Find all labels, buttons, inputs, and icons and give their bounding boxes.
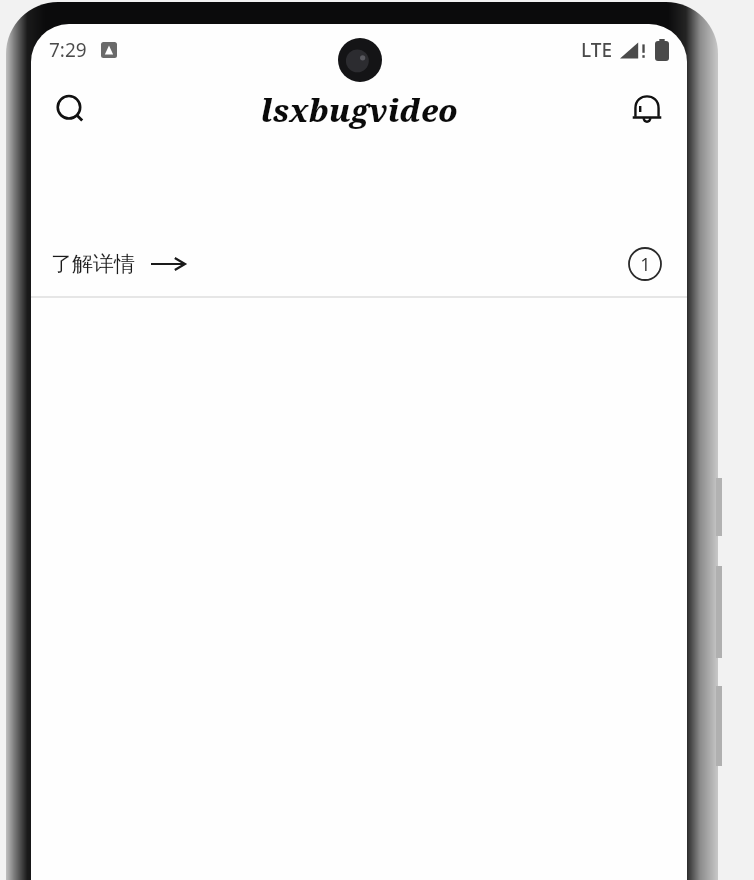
staticText: LTE bbox=[581, 37, 613, 63]
staticText: lsxbugvideo bbox=[261, 89, 458, 131]
staticText: 7:29 bbox=[49, 37, 87, 63]
button[interactable]: 了解详情 bbox=[31, 232, 687, 296]
button[interactable]: Page 1 indicator bbox=[623, 242, 667, 286]
button[interactable]: Search bbox=[45, 84, 97, 136]
button[interactable]: Notifications bbox=[621, 84, 673, 136]
staticText: 了解详情 bbox=[51, 251, 135, 277]
staticText: 1 bbox=[640, 252, 651, 277]
